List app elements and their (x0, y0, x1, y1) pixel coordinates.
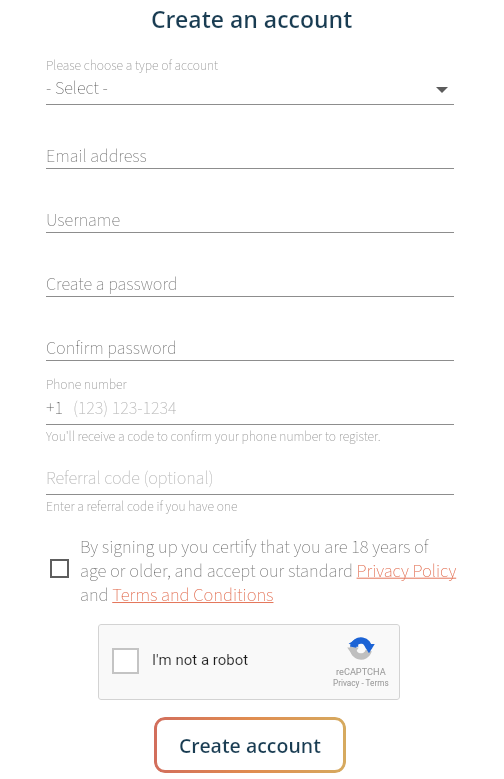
staticText: Enter a referral code if you have one (46, 497, 238, 516)
staticText: Create an account (151, 3, 353, 34)
button[interactable]: Referral code (46, 466, 454, 492)
staticText: Username (46, 208, 120, 232)
staticText: +1 (46, 396, 63, 420)
button[interactable]: Create a password (46, 272, 454, 296)
staticText: By signing up you certify that you are 1… (80, 534, 458, 609)
staticText: reCAPTCHA (336, 666, 386, 677)
staticText: Referral code (optional) (46, 466, 214, 492)
staticText: Please choose a type of account (46, 56, 219, 75)
staticText: (123) 123-1234 (73, 396, 177, 420)
button[interactable]: Username (46, 208, 454, 232)
staticText: I'm not a robot (152, 651, 249, 669)
staticText: Email address (46, 144, 147, 168)
button[interactable]: Choose a type of account (46, 76, 454, 102)
staticText: Phone number (46, 375, 127, 394)
button[interactable]: Email address (46, 144, 454, 168)
staticText: - Select - (46, 76, 108, 102)
button[interactable]: Agree to terms (50, 559, 69, 578)
button[interactable]: Phone number (46, 396, 454, 420)
button[interactable]: I'm not a robot reCAPTCHA (98, 624, 400, 700)
staticText: Create account (179, 732, 321, 759)
staticText: You'll receive a code to confirm your ph… (46, 427, 381, 446)
button[interactable]: Confirm password (46, 336, 454, 360)
button[interactable]: By signing up you certify that you are 1… (80, 534, 458, 609)
staticText: Create a password (46, 272, 178, 296)
staticText: Confirm password (46, 336, 177, 360)
button[interactable]: Create account (154, 717, 346, 773)
staticText: Privacy - Terms (333, 678, 389, 688)
